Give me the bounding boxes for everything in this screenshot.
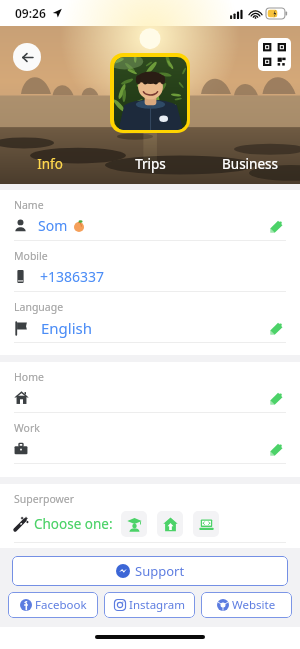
staticText: Info xyxy=(37,155,63,173)
staticText: Instagram xyxy=(129,597,185,613)
staticText: Support xyxy=(135,562,185,580)
button[interactable]: Home xyxy=(0,370,300,421)
staticText: English xyxy=(41,318,93,338)
staticText: Superpower xyxy=(14,492,75,506)
staticText: 09:26 xyxy=(15,5,46,21)
button[interactable]: Home superpower xyxy=(157,511,183,537)
staticText: Website xyxy=(232,597,276,613)
staticText: Choose one: xyxy=(34,515,113,533)
staticText: +1386337 xyxy=(40,267,105,286)
button[interactable]: Work xyxy=(0,421,300,472)
button[interactable]: Edit Work xyxy=(266,439,286,459)
button[interactable]: Edit Language xyxy=(266,318,286,338)
button[interactable]: Profile photo xyxy=(110,53,190,133)
staticText: Language xyxy=(14,300,64,314)
button[interactable]: QR code xyxy=(258,38,291,71)
button[interactable]: Trips xyxy=(100,153,200,175)
staticText: Som xyxy=(38,216,68,235)
button[interactable]: Edit Name xyxy=(266,216,286,236)
staticText: Trips xyxy=(135,155,166,173)
button[interactable]: Student superpower xyxy=(121,511,147,537)
button[interactable]: Support xyxy=(12,556,288,586)
button[interactable]: Superpower xyxy=(0,492,300,543)
button[interactable]: Business xyxy=(200,153,300,175)
button[interactable]: Mobile xyxy=(0,249,300,300)
button[interactable]: Language xyxy=(0,300,300,351)
button[interactable]: Website xyxy=(201,592,292,618)
button[interactable]: Edit Home xyxy=(266,388,286,408)
button[interactable]: Facebook xyxy=(8,592,98,618)
button[interactable]: Back xyxy=(13,43,41,71)
button[interactable]: Developer superpower xyxy=(193,511,219,537)
staticText: Name xyxy=(14,198,44,212)
button[interactable]: Instagram xyxy=(104,592,195,618)
staticText: Mobile xyxy=(14,249,48,263)
staticText: Facebook xyxy=(35,597,87,613)
button[interactable]: Name xyxy=(0,198,300,249)
staticText: Home xyxy=(14,370,44,384)
staticText: Work xyxy=(14,421,40,435)
staticText: Business xyxy=(222,155,278,173)
button[interactable]: Info xyxy=(0,153,100,175)
